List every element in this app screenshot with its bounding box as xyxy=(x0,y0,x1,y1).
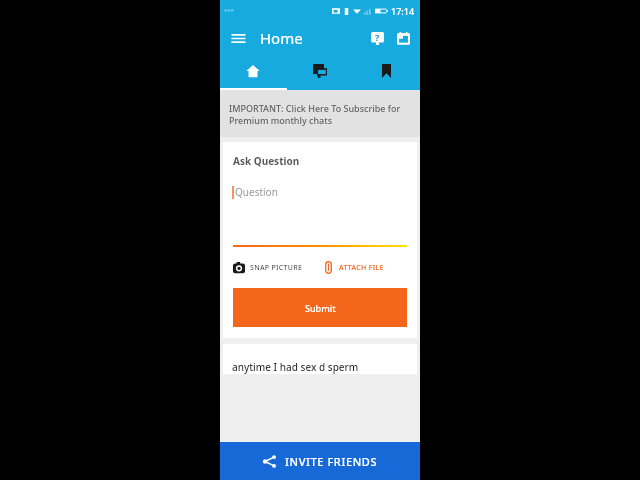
button[interactable]: INVITE FRIENDS xyxy=(220,442,420,480)
staticText: anytime I had sex d sperm xyxy=(232,360,359,374)
staticText: Submit xyxy=(305,302,336,314)
staticText: ? xyxy=(375,31,380,43)
button[interactable]: IMPORTANT: Click Here To Subscribe for P… xyxy=(220,90,420,137)
button[interactable]: Help xyxy=(367,28,387,48)
staticText: INVITE FRIENDS xyxy=(285,454,378,469)
button[interactable]: ATTACH FILE xyxy=(325,261,384,274)
button[interactable]: Chats tab xyxy=(286,54,353,88)
staticText: *** xyxy=(224,7,234,15)
staticText: IMPORTANT: Click Here To Subscribe for P… xyxy=(229,102,406,126)
button[interactable]: Calendar xyxy=(393,28,413,48)
button[interactable]: SNAP PICTURE xyxy=(233,262,303,274)
staticText: Home xyxy=(260,28,303,48)
staticText: Ask Question xyxy=(233,154,300,168)
button[interactable]: anytime I had sex d sperm xyxy=(223,344,417,374)
button[interactable]: Open navigation menu xyxy=(226,26,250,50)
button[interactable]: Bookmarks tab xyxy=(353,54,420,88)
button[interactable]: Submit xyxy=(233,288,407,327)
button[interactable]: Home tab xyxy=(220,54,286,88)
staticText: Question xyxy=(235,185,278,199)
staticText: 17:14 xyxy=(391,5,415,17)
staticText: SNAP PICTURE xyxy=(250,263,303,273)
staticText: ATTACH FILE xyxy=(339,263,384,273)
